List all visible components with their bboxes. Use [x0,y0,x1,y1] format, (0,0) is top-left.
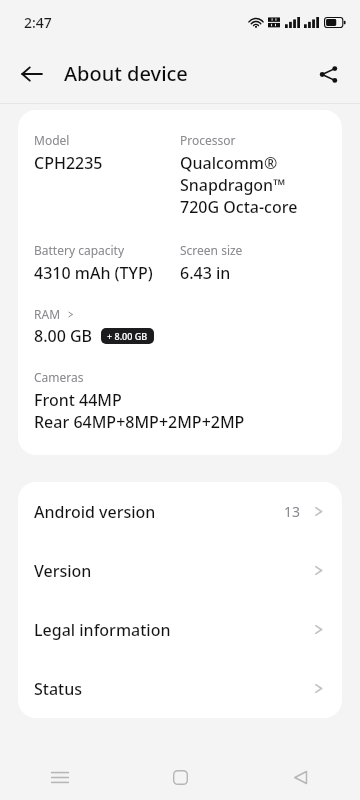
staticText: Screen size [180,242,243,258]
button[interactable]: Back [10,52,54,96]
staticText: Rear 64MP+8MP+2MP+2MP [34,411,245,433]
staticText: 4310 mAh (TYP) [34,262,153,284]
button[interactable]: Status [18,659,342,718]
staticText: Android version [34,501,156,523]
button[interactable]: Home [120,755,240,800]
staticText: Battery capacity [34,242,125,258]
staticText: Processor [180,132,236,148]
button[interactable]: Version [18,541,342,600]
staticText: Qualcomm® [180,152,278,174]
staticText: Cameras [34,369,84,385]
staticText: 2:47 [24,13,52,32]
staticText: 720G Octa-core [180,196,298,218]
button[interactable]: Android version [18,482,342,541]
staticText: About device [64,60,188,87]
staticText: Snapdragon™ [180,174,286,196]
staticText: Version [34,560,92,582]
staticText: RAM [34,306,61,322]
staticText: Front 44MP [34,389,122,411]
button[interactable]: Legal information [18,600,342,659]
staticText: + 8.00 GB [107,330,148,342]
staticText: 8.00 GB [34,325,93,347]
button[interactable]: Share [306,52,350,96]
staticText: Legal information [34,619,171,641]
staticText: Model [34,132,70,148]
staticText: 13 [284,502,301,521]
staticText: 6.43 in [180,262,231,284]
button[interactable]: RAM [34,306,75,322]
staticText: CPH2235 [34,152,103,174]
button[interactable]: Recents [0,755,120,800]
button[interactable]: Back [240,755,360,800]
staticText: Status [34,678,83,700]
